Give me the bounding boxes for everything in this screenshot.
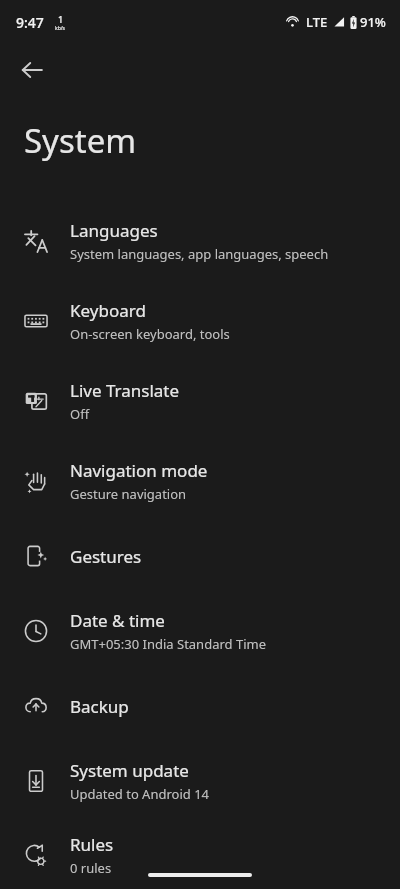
staticText: Date & time [70, 609, 165, 632]
button[interactable]: Backup [0, 671, 400, 741]
staticText: Rules [70, 833, 114, 856]
staticText: Navigation mode [70, 459, 208, 482]
button[interactable]: Languages [0, 201, 400, 281]
staticText: Backup [70, 695, 129, 718]
staticText: System [24, 118, 137, 163]
staticText: Languages [70, 219, 158, 242]
staticText: GMT+05:30 India Standard Time [70, 635, 266, 653]
button[interactable]: Navigation mode [0, 441, 400, 521]
staticText: Gesture navigation [70, 485, 187, 503]
button[interactable]: Date & time [0, 591, 400, 671]
staticText: Gestures [70, 545, 142, 568]
staticText: LTE [306, 13, 328, 31]
staticText: 91% [360, 13, 386, 31]
staticText: 9:47 [16, 13, 44, 32]
staticText: kb/s [55, 25, 66, 32]
button[interactable]: Rules [0, 821, 400, 889]
button[interactable]: Gestures [0, 521, 400, 591]
button[interactable]: Keyboard [0, 281, 400, 361]
staticText: 1 [58, 13, 64, 25]
staticText: On-screen keyboard, tools [70, 325, 230, 343]
staticText: System update [70, 759, 189, 782]
button[interactable]: Live Translate [0, 361, 400, 441]
button[interactable]: Back [8, 46, 56, 94]
button[interactable]: System update [0, 741, 400, 821]
staticText: 0 rules [70, 859, 112, 877]
staticText: Updated to Android 14 [70, 785, 210, 803]
staticText: Live Translate [70, 379, 180, 402]
staticText: System languages, app languages, speech [70, 245, 329, 263]
staticText: Off [70, 405, 90, 423]
staticText: Keyboard [70, 299, 146, 322]
